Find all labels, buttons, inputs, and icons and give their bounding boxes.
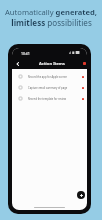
button[interactable]: Capture email summary of page — [12, 82, 87, 93]
staticText: limitless possibilities — [11, 17, 92, 28]
staticText: Automatically generated, — [5, 7, 97, 17]
button[interactable]: Resend the template for review — [12, 93, 87, 104]
staticText: Resend the template for review — [28, 97, 67, 101]
staticText: Record the app for Apple screen — [28, 75, 68, 79]
staticText: Action Items — [39, 61, 65, 67]
button[interactable]: Record the app for Apple screen — [12, 71, 87, 82]
staticText: 10:41 — [21, 51, 30, 56]
staticText: Capture email summary of page — [28, 86, 68, 90]
button[interactable]: Record — [81, 58, 87, 69]
button[interactable]: Back — [12, 58, 24, 69]
button[interactable]: Add action item — [77, 191, 85, 199]
